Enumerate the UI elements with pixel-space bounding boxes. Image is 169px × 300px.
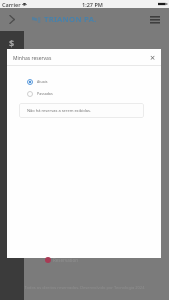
staticText: Minhas reservas (13, 55, 52, 62)
button[interactable]: Atuais (27, 77, 48, 86)
staticText: $ (9, 37, 15, 49)
staticText: Passadas (37, 91, 53, 96)
staticText: Reservation (53, 257, 78, 263)
button[interactable]: Close (147, 51, 158, 62)
button[interactable]: Forward (2, 8, 22, 31)
button[interactable]: Passadas (27, 89, 53, 98)
staticText: Não há reservas a serem exibidas. (27, 108, 91, 113)
button[interactable]: Currency menu (0, 31, 24, 300)
staticText: Carrier (2, 1, 21, 8)
button[interactable]: Menu (145, 8, 165, 31)
staticText: 1:27 PM (82, 1, 103, 8)
staticText: × (150, 51, 156, 62)
staticText: Atuais (37, 79, 48, 84)
staticText: TRIANON PA. (44, 14, 97, 25)
staticText: Todos os direitos reservados. Desenvolvi… (20, 285, 149, 290)
button[interactable]: Reservation (45, 257, 78, 263)
